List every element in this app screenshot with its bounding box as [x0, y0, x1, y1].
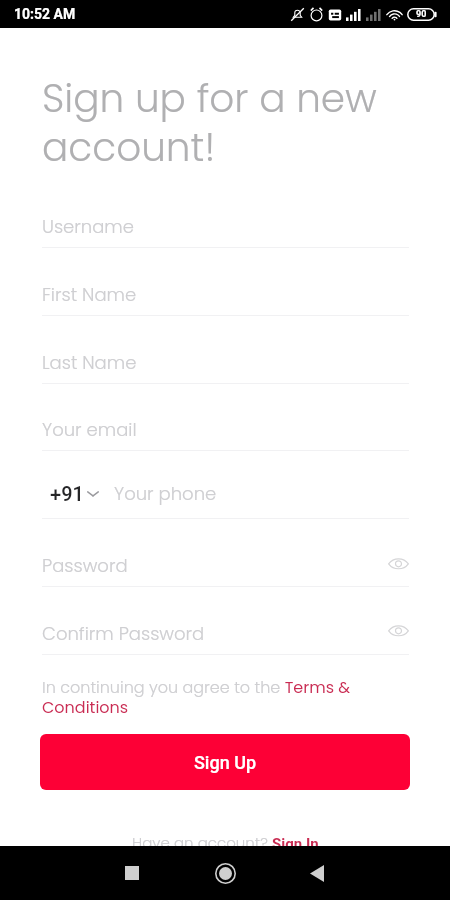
button[interactable]: Username: [42, 203, 409, 248]
staticText: First Name: [42, 282, 137, 307]
staticText: Password: [42, 553, 128, 578]
staticText: Sign Up: [194, 752, 257, 773]
button[interactable]: Back: [287, 846, 347, 900]
staticText: Have an account?: [132, 832, 272, 853]
button[interactable]: Have an account?: [132, 832, 319, 853]
button[interactable]: Your email: [42, 406, 409, 451]
button[interactable]: Confirm Password: [42, 610, 409, 655]
staticText: Sign In: [272, 835, 319, 853]
button[interactable]: Recent apps: [102, 846, 162, 900]
staticText: Your email: [42, 417, 137, 442]
staticText: 90: [416, 9, 427, 20]
staticText: In continuing you agree to the Terms & C…: [42, 676, 372, 719]
button[interactable]: Sign Up: [40, 734, 410, 790]
button[interactable]: Toggle password visibility: [384, 616, 412, 644]
staticText: Your phone: [114, 481, 217, 506]
button[interactable]: Password: [42, 542, 409, 587]
staticText: +91: [50, 482, 84, 505]
button[interactable]: Home: [195, 846, 255, 900]
button[interactable]: Last Name: [42, 339, 409, 384]
button[interactable]: Toggle password visibility: [384, 549, 412, 577]
staticText: Sign up for a new account!: [42, 71, 388, 175]
staticText: Username: [42, 214, 134, 239]
staticText: Confirm Password: [42, 621, 205, 646]
staticText: 10:52 AM: [14, 6, 76, 22]
button[interactable]: Select country code, +91: [42, 474, 409, 519]
button[interactable]: Select country code, +91: [50, 482, 99, 505]
staticText: Last Name: [42, 350, 137, 375]
button[interactable]: First Name: [42, 271, 409, 316]
button[interactable]: In continuing you agree to the Terms & C…: [42, 676, 372, 719]
